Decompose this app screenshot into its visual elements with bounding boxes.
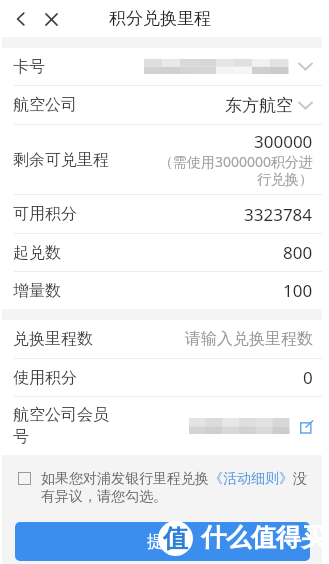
staticText: 如果您对浦发银行里程兑换《活动细则》没有异议，请您勾选。 <box>41 470 316 506</box>
button[interactable]: 可用积分 <box>2 195 322 233</box>
staticText: 兑换里程数 <box>13 329 93 349</box>
button[interactable]: 提交 <box>15 522 310 561</box>
staticText: 值 <box>163 523 188 554</box>
staticText: 积分兑换里程 <box>109 8 211 29</box>
staticText: 航空公司会员号 <box>13 405 113 447</box>
button[interactable]: 增量数 <box>2 272 322 309</box>
button[interactable]: Back <box>9 7 33 31</box>
button[interactable]: 兑换里程数 <box>2 320 322 358</box>
staticText: 起兑数 <box>13 243 61 263</box>
staticText: 增量数 <box>13 281 61 301</box>
button[interactable]: 起兑数 <box>2 234 322 271</box>
staticText: 请输入兑换里程数 <box>185 329 313 349</box>
staticText: 800 <box>283 241 313 264</box>
staticText: 100 <box>283 279 313 302</box>
button[interactable]: Agree checkbox <box>18 472 31 485</box>
staticText: 0 <box>303 366 313 389</box>
staticText: 卡号 <box>13 57 45 77</box>
staticText: 什么值得买 <box>201 522 326 553</box>
button[interactable]: 航空公司 <box>2 86 322 124</box>
staticText: 东方航空 <box>225 95 293 116</box>
staticText: 提交 <box>147 532 179 552</box>
staticText: 剩余可兑里程 <box>13 150 109 170</box>
button[interactable]: 使用积分 <box>2 359 322 396</box>
staticText: 300000 <box>254 130 313 153</box>
staticText: （需使用3000000积分进行兑换） <box>152 152 313 188</box>
staticText: 航空公司 <box>13 95 77 115</box>
staticText: 使用积分 <box>13 368 77 388</box>
staticText: 可用积分 <box>13 204 77 224</box>
button[interactable]: 剩余可兑里程 <box>2 125 322 194</box>
button[interactable]: 航空公司会员号 <box>2 397 322 455</box>
staticText: 3323784 <box>244 203 313 226</box>
other: Edit <box>300 420 313 433</box>
button[interactable]: 卡号 <box>2 48 322 85</box>
button[interactable]: Close <box>39 7 63 31</box>
